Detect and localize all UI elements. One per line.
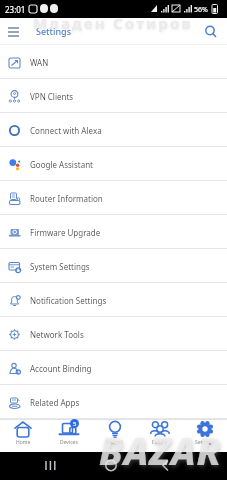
staticText: Google Assistant [30, 159, 93, 170]
button[interactable]: Family [137, 420, 182, 452]
staticText: System Settings [30, 261, 90, 272]
staticText: Router Information [30, 193, 103, 204]
button[interactable] [2, 22, 26, 42]
button[interactable]: Account Binding [0, 351, 227, 385]
button[interactable]: Related Apps [0, 385, 227, 419]
staticText: Settings [36, 25, 72, 37]
staticText: Account Binding [30, 363, 92, 374]
staticText: Devices [60, 439, 78, 446]
staticText: Firmware Upgrade [30, 227, 101, 238]
button[interactable]: Router Information [0, 181, 227, 215]
button[interactable]: System Settings [0, 249, 227, 283]
staticText: WAN [30, 57, 49, 68]
button[interactable]: Notification Settings [0, 283, 227, 317]
button[interactable] [202, 23, 220, 41]
staticText: Settings [195, 439, 215, 446]
staticText: VPN Clients [30, 91, 74, 102]
staticText: 56% [194, 5, 208, 15]
button[interactable]: Google Assistant [0, 147, 227, 181]
staticText: 23:01 [5, 4, 26, 15]
button[interactable]: 5 [46, 420, 92, 452]
staticText: Network Tools [30, 329, 84, 340]
staticText: Family [152, 439, 168, 446]
staticText: Connect with Alexa [30, 125, 102, 136]
staticText: Notification Settings [30, 295, 107, 306]
staticText: Insight [106, 439, 123, 446]
staticText: Home [16, 439, 31, 446]
button[interactable]: Network Tools [0, 317, 227, 351]
button[interactable]: Firmware Upgrade [0, 215, 227, 249]
button[interactable]: Home [0, 420, 46, 452]
button[interactable]: Insight [92, 420, 137, 452]
staticText: BAZAR [99, 424, 222, 476]
button[interactable]: VPN Clients [0, 79, 227, 113]
button[interactable]: Settings [182, 420, 227, 452]
staticText: 5 [73, 420, 77, 428]
button[interactable]: Connect with Alexa [0, 113, 227, 147]
staticText: Младен Сотиров [33, 13, 193, 33]
button[interactable]: WAN [0, 45, 227, 79]
staticText: Related Apps [30, 397, 80, 408]
